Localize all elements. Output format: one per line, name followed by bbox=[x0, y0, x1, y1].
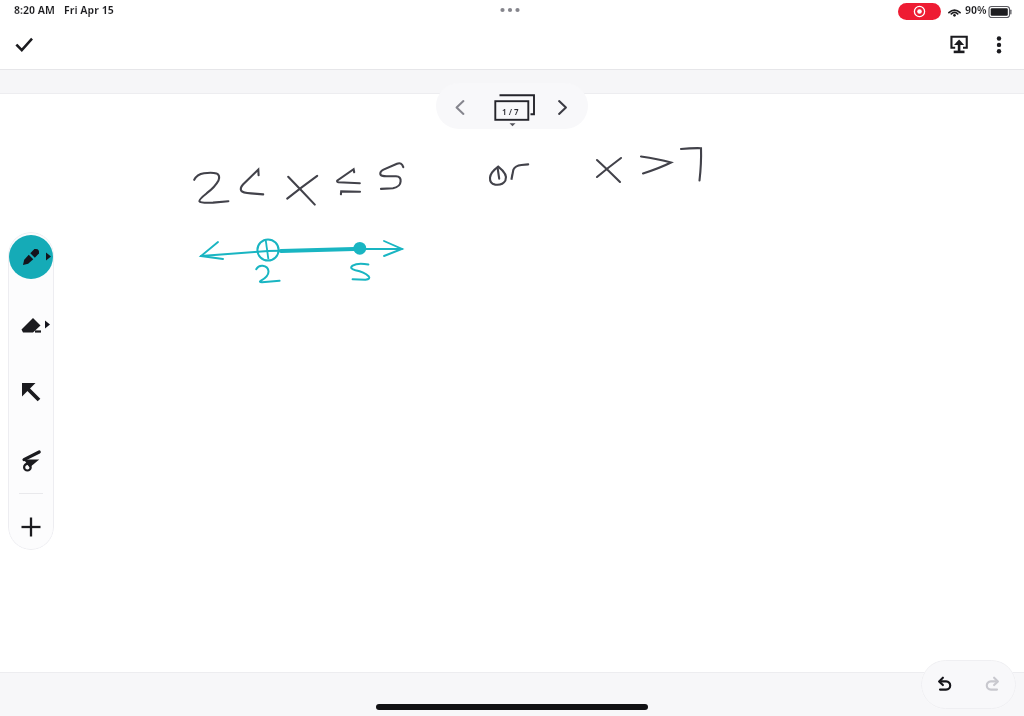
button[interactable]: Add page bbox=[9, 505, 53, 549]
button[interactable]: Eraser tool bbox=[9, 303, 53, 347]
button[interactable]: Next page bbox=[540, 83, 588, 129]
button[interactable]: Show page list bbox=[508, 122, 517, 128]
button[interactable]: Redo bbox=[968, 660, 1016, 709]
button[interactable]: Pen options bbox=[45, 252, 54, 261]
button[interactable]: Undo bbox=[921, 660, 969, 709]
button[interactable]: Present to screen bbox=[938, 24, 980, 66]
button[interactable]: Previous page bbox=[436, 83, 484, 129]
button[interactable]: Page 1 of 7 bbox=[484, 83, 540, 129]
button[interactable]: Laser pointer bbox=[9, 438, 53, 482]
button[interactable]: Select tool bbox=[9, 370, 53, 414]
button[interactable]: More options bbox=[983, 25, 1017, 59]
button[interactable]: Eraser options bbox=[44, 320, 53, 329]
staticText: 8:20 AM bbox=[14, 3, 55, 17]
staticText: Fri Apr 15 bbox=[64, 3, 114, 17]
staticText: 90% bbox=[965, 3, 987, 17]
staticText: 1 / 7 bbox=[502, 106, 519, 117]
button[interactable]: Pen tool bbox=[9, 235, 53, 279]
button[interactable]: Done bbox=[7, 29, 43, 65]
